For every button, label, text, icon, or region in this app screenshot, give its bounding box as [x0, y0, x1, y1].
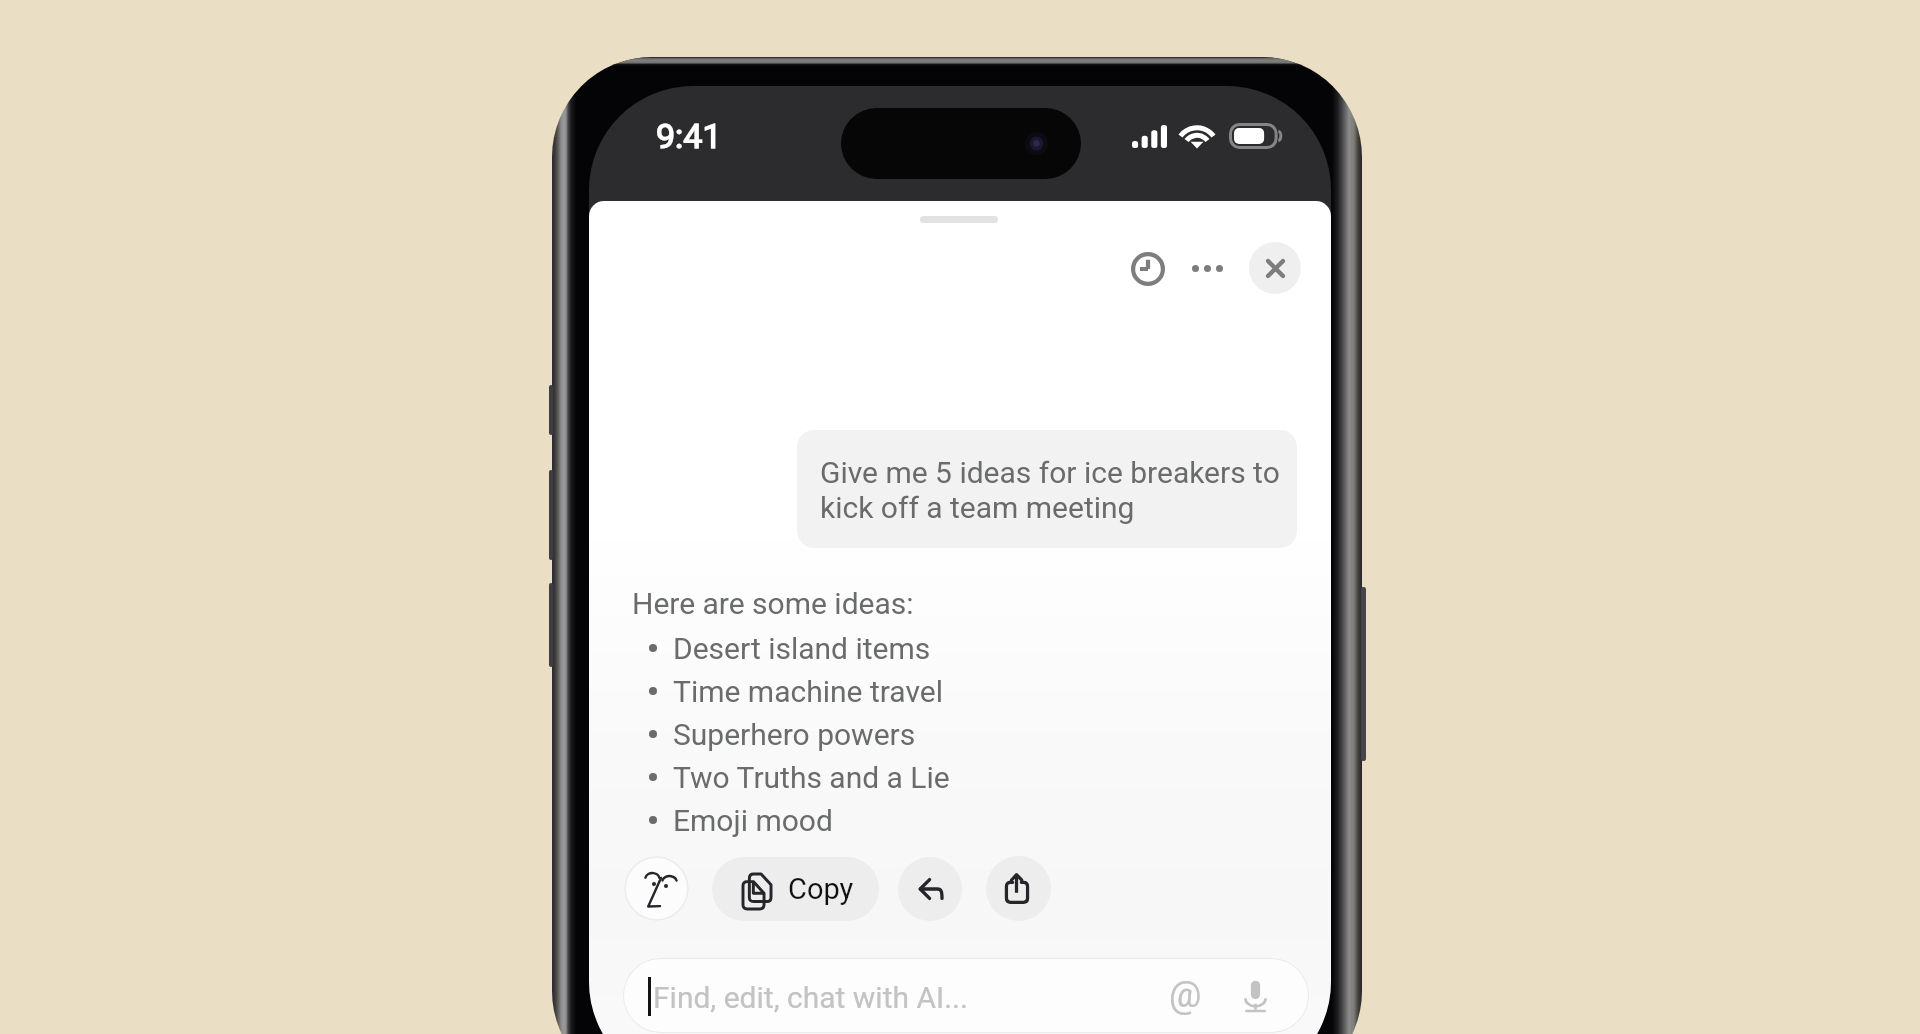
button[interactable]: Superhero powers	[649, 713, 1069, 755]
button[interactable]: Desert island items	[649, 627, 1069, 669]
button[interactable]: Share	[986, 856, 1051, 921]
staticText: Give me 5 ideas for ice breakers to kick…	[820, 455, 1280, 525]
staticText: Two Truths and a Lie	[673, 760, 950, 795]
staticText: Superhero powers	[673, 717, 916, 752]
button[interactable]: Give me 5 ideas for ice breakers to kick…	[797, 430, 1297, 548]
button[interactable]: Find, edit, chat with AI...	[623, 958, 1309, 1033]
button[interactable]: Mention	[1161, 970, 1209, 1018]
button[interactable]: Close	[1249, 242, 1301, 294]
button[interactable]: Two Truths and a Lie	[649, 756, 1069, 798]
staticText: @	[1169, 974, 1202, 1016]
staticText: Desert island items	[673, 631, 931, 666]
button[interactable]: History	[1120, 241, 1175, 296]
button[interactable]: Emoji mood	[649, 799, 1069, 841]
button[interactable]: Voice input	[1232, 973, 1278, 1019]
button[interactable]: Assistant	[624, 856, 689, 921]
staticText: Here are some ideas:	[632, 586, 914, 621]
staticText: Emoji mood	[673, 803, 833, 838]
staticText: Time machine travel	[673, 674, 943, 709]
staticText: 9:41	[656, 116, 722, 156]
staticText: Find, edit, chat with AI...	[653, 980, 968, 1015]
button[interactable]: Copy	[712, 857, 879, 921]
button[interactable]: Reply	[898, 857, 962, 921]
staticText: Copy	[788, 872, 854, 906]
button[interactable]: More options	[1180, 241, 1235, 296]
button[interactable]: Time machine travel	[649, 670, 1069, 712]
